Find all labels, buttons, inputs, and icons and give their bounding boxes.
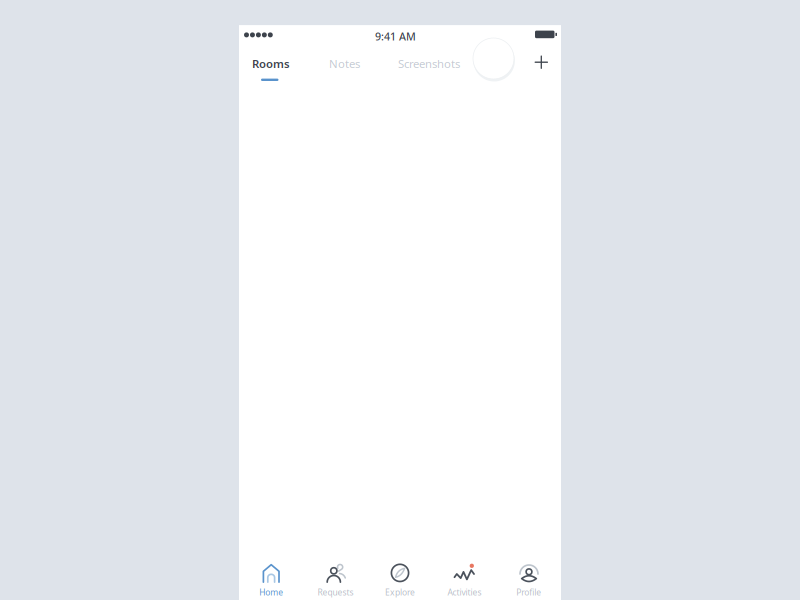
- staticText: Profile: [516, 586, 541, 598]
- button[interactable]: Rooms: [252, 45, 296, 89]
- staticText: Notes: [329, 56, 360, 71]
- button[interactable]: Add: [525, 46, 557, 78]
- button[interactable]: Notes: [329, 45, 363, 89]
- staticText: 9:41 AM: [375, 29, 416, 44]
- button[interactable]: Requests: [303, 538, 368, 600]
- button[interactable]: Profile photo: [473, 38, 517, 84]
- button[interactable]: Activities: [432, 538, 497, 600]
- staticText: Screenshots: [398, 56, 460, 71]
- staticText: Activities: [447, 586, 481, 598]
- staticText: Explore: [385, 586, 415, 598]
- staticText: Rooms: [252, 56, 290, 71]
- button[interactable]: Screenshots: [398, 45, 468, 89]
- staticText: Requests: [318, 586, 354, 598]
- button[interactable]: Home: [239, 538, 303, 600]
- button[interactable]: Explore: [368, 538, 432, 600]
- staticText: Home: [259, 586, 283, 598]
- button[interactable]: Profile: [497, 538, 561, 600]
